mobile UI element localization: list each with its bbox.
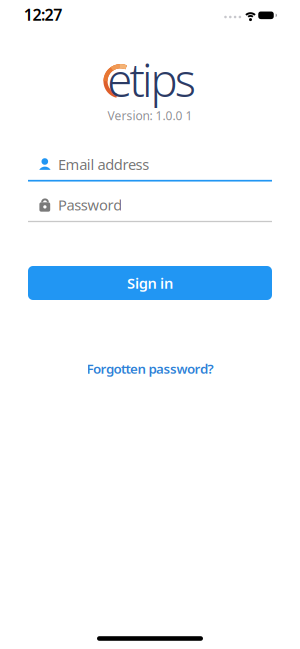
button[interactable]: Forgotten password? xyxy=(86,360,213,377)
staticText: 12:27 xyxy=(24,4,62,25)
staticText: Email address xyxy=(58,155,149,174)
button[interactable]: Sign in xyxy=(28,266,272,300)
staticText: Version: 1.0.0 1 xyxy=(107,107,192,123)
button[interactable]: Email address xyxy=(0,148,300,180)
staticText: Forgotten password? xyxy=(86,360,213,377)
staticText: Password xyxy=(58,195,122,215)
staticText: etips xyxy=(107,49,196,110)
staticText: Sign in xyxy=(127,273,173,293)
button[interactable]: Password xyxy=(0,189,300,221)
